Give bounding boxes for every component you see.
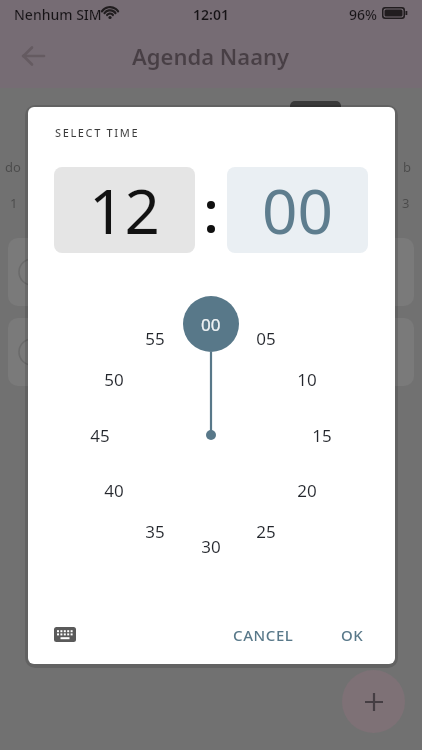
button[interactable]: 00	[227, 167, 368, 253]
staticText: 45	[90, 424, 110, 447]
staticText: 12:01	[193, 5, 229, 24]
button[interactable]: 12	[54, 167, 195, 253]
button[interactable]: 25	[246, 519, 286, 543]
staticText: 35	[145, 520, 165, 543]
staticText: 3	[402, 194, 410, 210]
button[interactable]: 40	[94, 478, 134, 502]
staticText: 15	[312, 424, 332, 447]
button[interactable]	[54, 627, 76, 643]
staticText: 96%	[349, 5, 377, 24]
button[interactable]: 50	[94, 367, 134, 391]
button[interactable]: 55	[135, 326, 175, 350]
staticText: 50	[104, 368, 124, 391]
button[interactable]	[21, 44, 46, 68]
button[interactable]: 30	[191, 534, 231, 558]
staticText: 55	[145, 327, 165, 350]
staticText: 1	[10, 194, 18, 210]
staticText: Nenhum SIM	[14, 5, 102, 24]
staticText: 00	[201, 313, 221, 336]
button[interactable]: 15	[302, 423, 342, 447]
staticText: 12	[89, 168, 160, 252]
staticText: OK	[341, 625, 364, 645]
staticText: do	[5, 158, 21, 174]
button[interactable]: 45	[80, 423, 120, 447]
button[interactable]: 35	[135, 519, 175, 543]
button[interactable]: 05	[246, 326, 286, 350]
button[interactable]: 00	[183, 296, 239, 352]
staticText: 00	[262, 168, 333, 252]
staticText: SELECT TIME	[55, 125, 140, 140]
staticText: 40	[104, 479, 124, 502]
staticText: 25	[256, 520, 276, 543]
staticText: 30	[201, 535, 221, 558]
button[interactable]: 10	[287, 367, 327, 391]
staticText: 05	[256, 327, 276, 350]
button[interactable]: OK	[332, 623, 372, 647]
staticText: Agenda Naany	[132, 41, 290, 71]
staticText: 10	[297, 368, 317, 391]
button[interactable]: 20	[287, 478, 327, 502]
staticText: CANCEL	[233, 625, 294, 645]
staticText: b	[403, 158, 411, 174]
staticText: 20	[297, 479, 317, 502]
button[interactable]: CANCEL	[223, 623, 303, 647]
button[interactable]	[342, 670, 405, 733]
